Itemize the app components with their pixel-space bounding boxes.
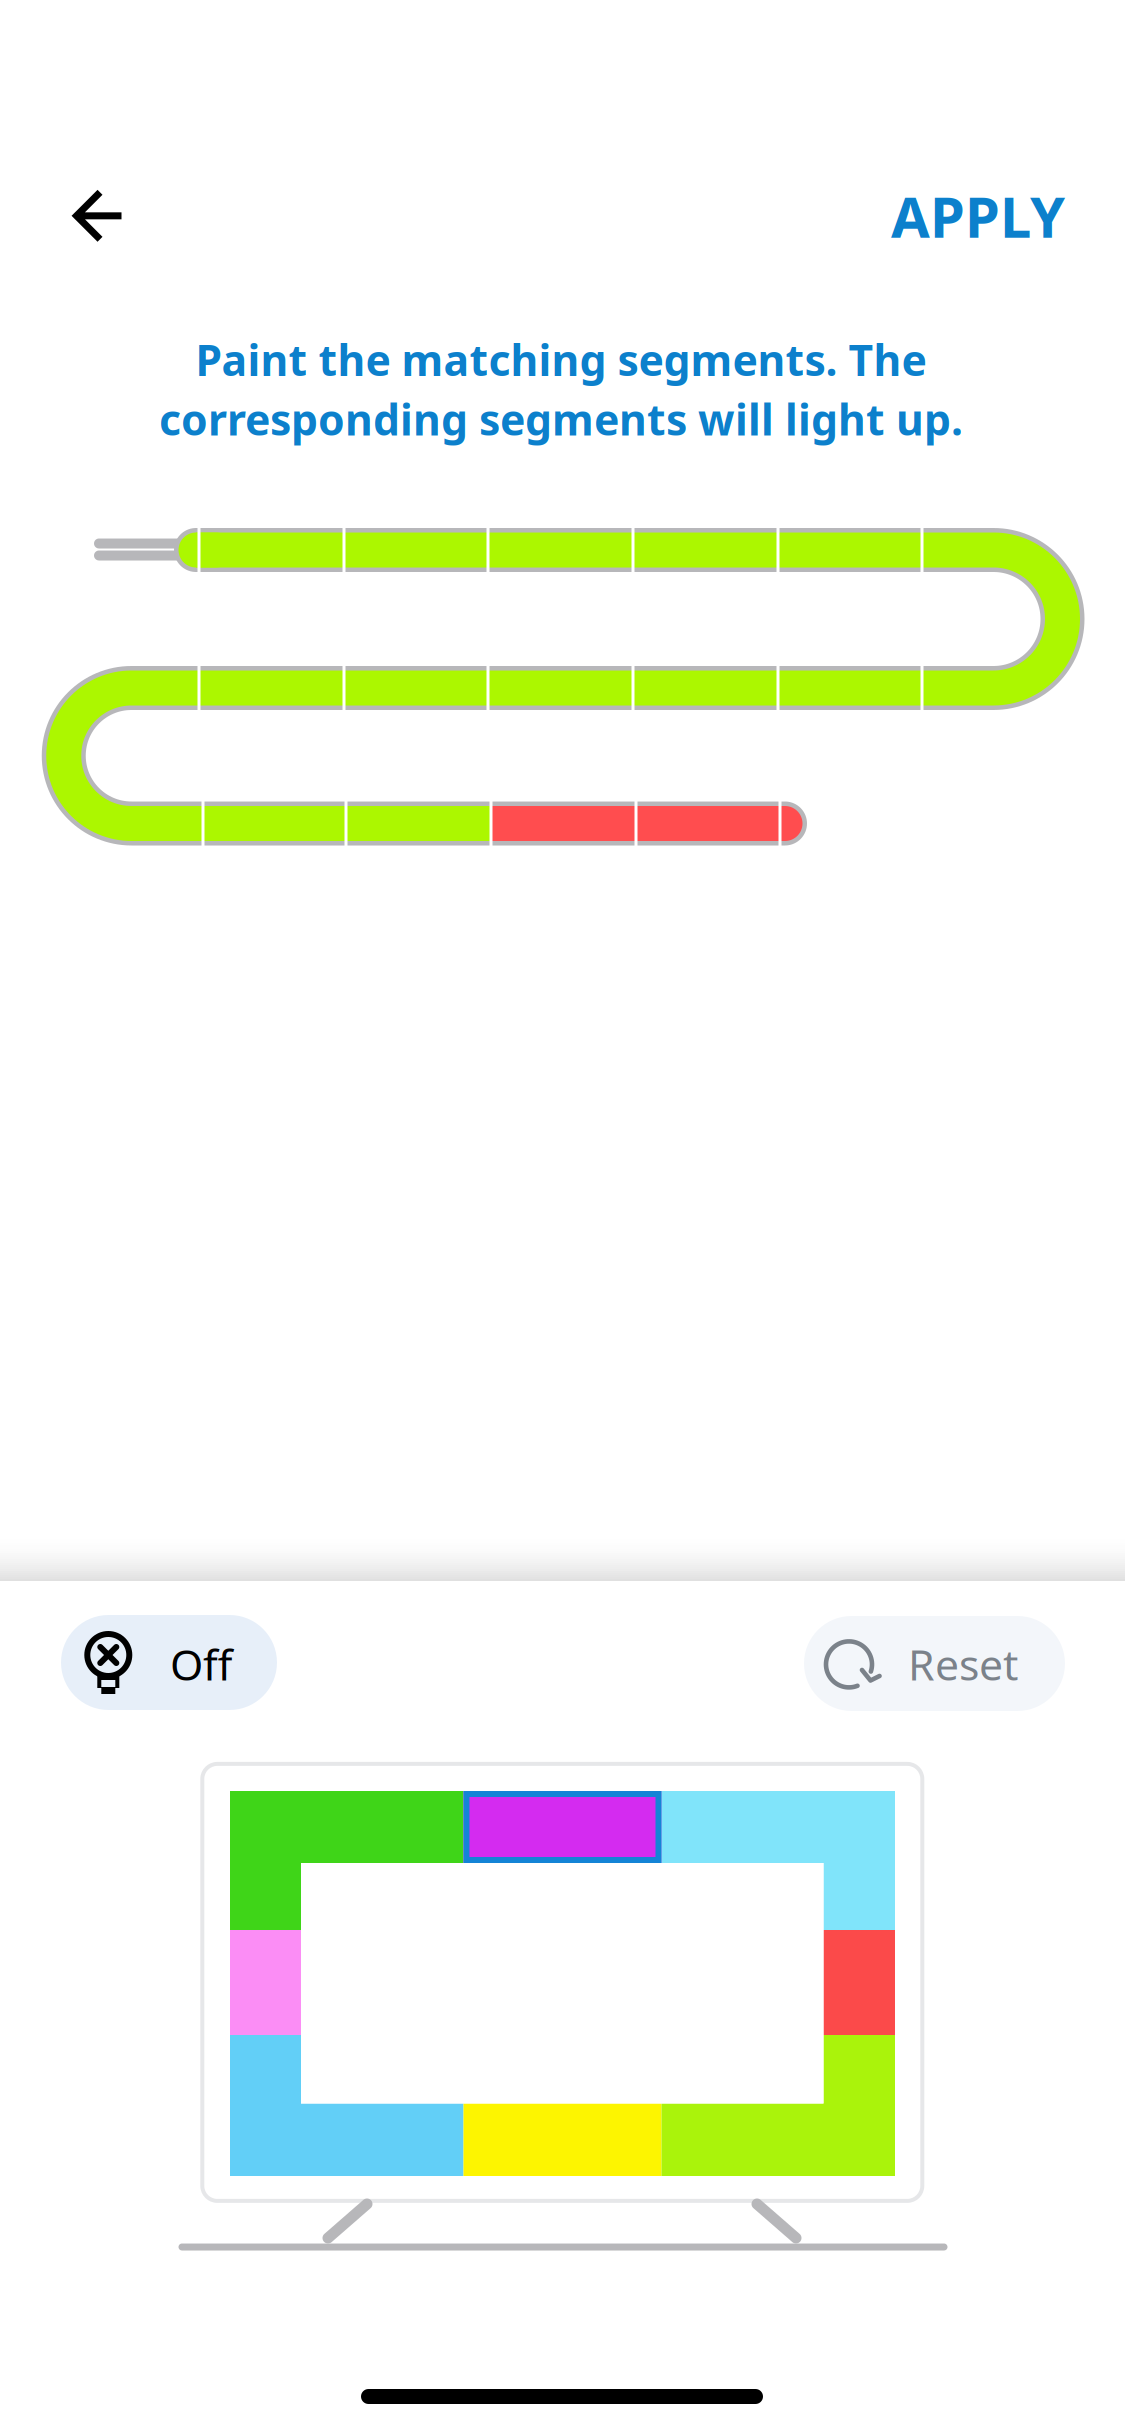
button[interactable]: Back — [36, 156, 156, 276]
staticText: APPLY — [891, 179, 1065, 253]
button[interactable] — [61, 1615, 277, 1710]
staticText: Reset — [908, 1636, 1018, 1692]
staticText: Paint the matching segments. The — [195, 331, 926, 388]
button[interactable]: APPLY — [815, 168, 1065, 264]
button[interactable] — [804, 1616, 1065, 1711]
staticText: Off — [170, 1636, 232, 1692]
staticText: corresponding segments will light up. — [159, 391, 963, 447]
